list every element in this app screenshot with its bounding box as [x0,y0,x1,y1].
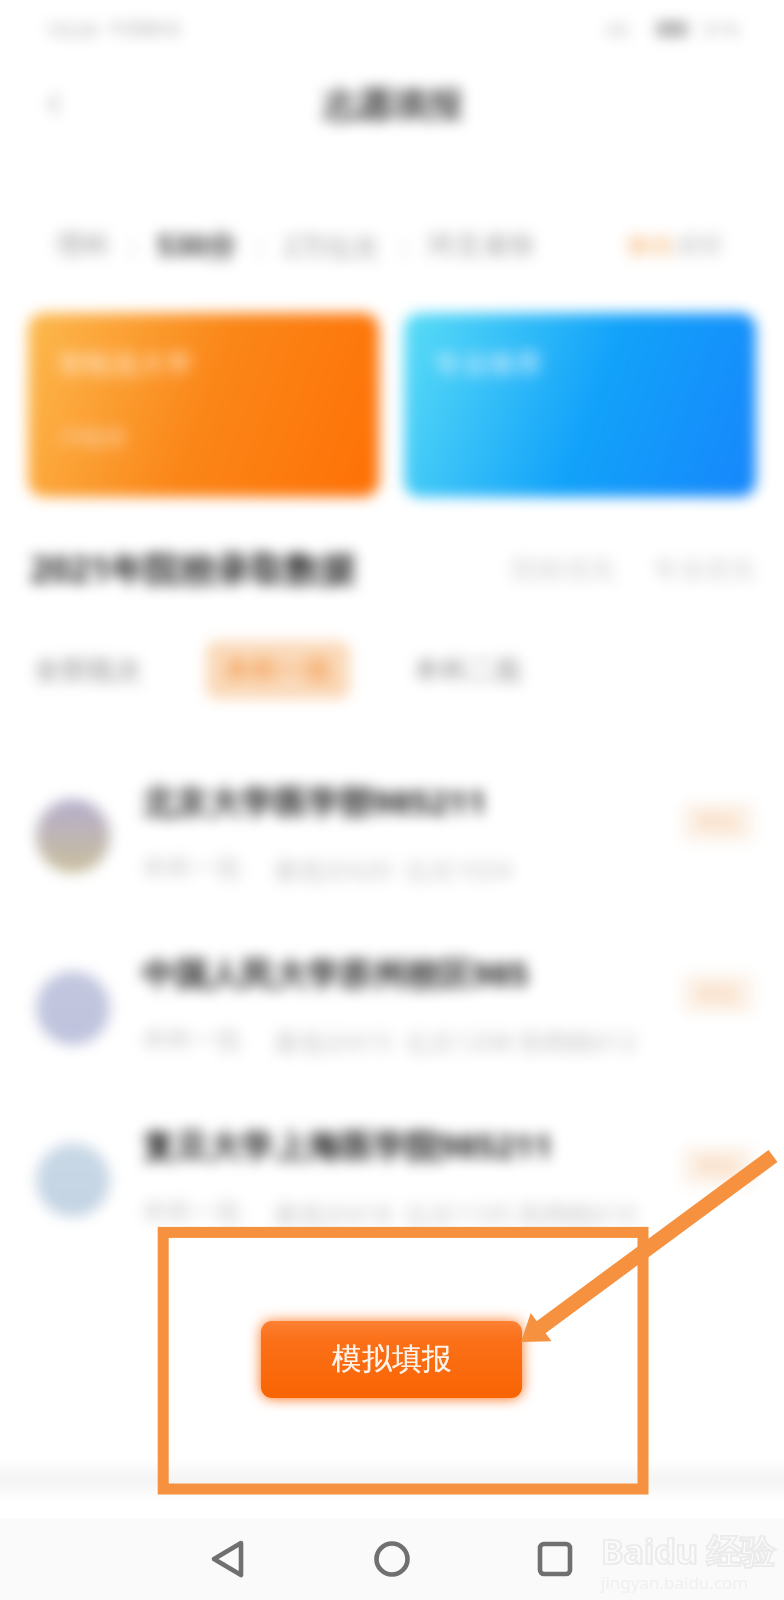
staticText: 中国人民大学苏州校区985 [142,951,529,996]
staticText: 对比 [697,809,739,835]
button[interactable]: 模拟填报 [261,1321,522,1398]
staticText: 河北省份 [427,228,535,262]
staticText: 模拟填报 [332,1340,452,1378]
staticText: 北京大学医学部985211 [142,779,487,824]
button[interactable]: 专业推荐 [404,313,756,497]
staticText: 理科 [56,228,110,262]
staticText: 修改 [626,230,674,260]
button[interactable]: 复旦大学上海医学院985211 [0,1094,784,1266]
staticText: 本科一批 [224,653,332,687]
button[interactable]: Home [360,1527,424,1591]
button[interactable]: 中国人民大学苏州校区985 [0,922,784,1094]
button[interactable]: 本科二批 [396,641,540,699]
button[interactable]: Back [30,79,80,129]
staticText: 中国移动 [108,18,180,41]
staticText: 志愿填报 [322,83,462,127]
staticText: 智能选大学 [58,347,193,381]
button[interactable]: 北京大学医学部985211 [0,750,784,922]
button[interactable]: Recent apps [523,1527,587,1591]
button[interactable]: 本科一批 [206,641,350,699]
staticText: 对比 [697,1153,739,1179]
button[interactable]: 智能选大学 [28,313,379,497]
button[interactable]: 全部批次 [16,641,160,699]
staticText: 10:24 [46,16,98,43]
staticText: 本科一批 [142,852,242,883]
staticText: 2万位次 [283,227,380,264]
staticText: 4G [606,17,630,42]
staticText: 本科一批 [142,1024,242,1055]
staticText: 81% [704,17,740,42]
staticText: | [110,230,157,260]
staticText: 本科二批 [414,653,522,687]
staticText: 最低分620 位次1024 [274,852,513,886]
button[interactable]: 修改 [626,230,722,260]
staticText: 院校优先 [512,553,616,586]
staticText: 本科一批 [142,1196,242,1227]
button[interactable]: 对比 [682,974,754,1014]
staticText: 专业优先 [652,553,756,586]
staticText: | [236,230,283,260]
staticText: 2021年院校录取数据 [30,545,356,593]
staticText: 专业推荐 [434,347,542,381]
staticText: 最低分618 位次1105 投档线610 [274,1196,637,1230]
staticText: 对比 [697,981,739,1007]
staticText: 冲稳保 [58,423,127,452]
staticText: Baidu 经验 [601,1528,775,1574]
staticText: 复旦大学上海医学院985211 [142,1123,553,1168]
staticText: 530分 [157,225,236,265]
button[interactable]: Back [196,1527,260,1591]
button[interactable]: 对比 [682,1146,754,1186]
staticText: 全部批次 [34,653,142,687]
staticText: jingyan.baidu.com [601,1571,749,1594]
staticText: 成绩 [674,230,722,260]
staticText: 最低分615 位次1208 投档线612 [274,1024,637,1058]
button[interactable]: 对比 [682,802,754,842]
